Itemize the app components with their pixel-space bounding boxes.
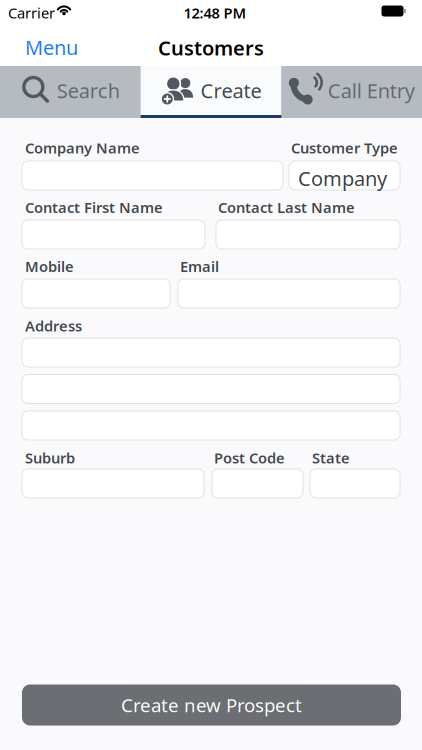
- staticText: Create new Prospect: [121, 693, 302, 717]
- staticText: Menu: [25, 34, 78, 61]
- staticText: Carrier: [8, 3, 55, 22]
- staticText: Post Code: [214, 448, 285, 467]
- staticText: Call Entry: [328, 77, 415, 104]
- staticText: 12:48 PM: [183, 3, 246, 22]
- staticText: Create: [200, 77, 261, 104]
- staticText: Contact Last Name: [218, 197, 355, 217]
- staticText: Mobile: [25, 256, 74, 276]
- button[interactable]: Menu: [0, 0, 53, 27]
- staticText: Suburb: [25, 448, 75, 467]
- button[interactable]: Call Entry: [281, 66, 422, 115]
- staticText: Contact First Name: [25, 197, 163, 217]
- staticText: Search: [57, 77, 120, 104]
- staticText: Email: [180, 256, 219, 276]
- button[interactable]: Create: [141, 66, 281, 115]
- staticText: State: [312, 448, 350, 467]
- staticText: Customer Type: [291, 138, 398, 157]
- button[interactable]: Company: [0, 0, 111, 29]
- staticText: Company Name: [25, 138, 140, 157]
- staticText: Address: [25, 316, 82, 335]
- button[interactable]: Search: [0, 66, 141, 115]
- button[interactable]: Create new Prospect: [0, 0, 379, 41]
- staticText: Company: [298, 165, 387, 192]
- staticText: Customers: [158, 34, 264, 61]
